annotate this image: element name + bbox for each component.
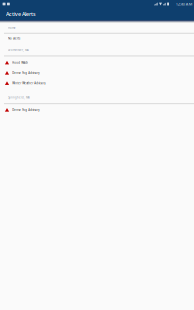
button[interactable]: Dense Fog Advisory <box>0 104 194 116</box>
button[interactable]: Flood Watch <box>0 57 194 68</box>
staticText: Springfield, MA <box>8 96 30 99</box>
button[interactable]: Dense Fog Advisory <box>0 68 194 78</box>
staticText: No alerts <box>8 37 20 40</box>
staticText: Home <box>8 26 16 30</box>
button[interactable]: Winter Weather Advisory <box>0 78 194 88</box>
staticText: 12:40 AM <box>176 1 193 7</box>
staticText: Dense Fog Advisory <box>12 71 39 75</box>
button[interactable]: No alerts <box>0 34 194 43</box>
staticText: Winter Weather Advisory <box>12 81 45 85</box>
staticText: Leominster, MA <box>8 48 29 52</box>
staticText: Dense Fog Advisory <box>12 108 39 112</box>
staticText: Active Alerts <box>6 10 36 18</box>
staticText: Flood Watch <box>12 61 28 64</box>
